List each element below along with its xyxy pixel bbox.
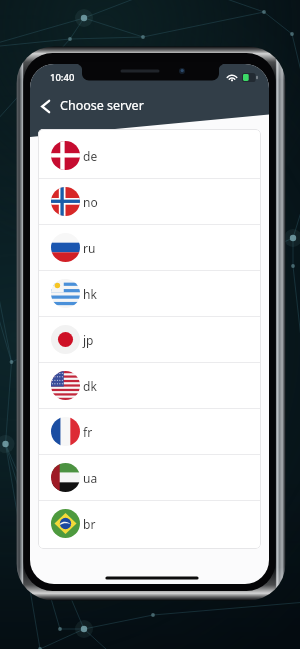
button[interactable]: fr	[38, 409, 261, 454]
staticText: de	[83, 148, 98, 164]
button[interactable]: de	[38, 133, 261, 178]
button[interactable]: ua	[38, 455, 261, 500]
button[interactable]: jp	[38, 317, 261, 362]
staticText: dk	[83, 378, 97, 394]
staticText: jp	[83, 332, 94, 348]
staticText: ua	[83, 470, 98, 486]
button[interactable]: hk	[38, 271, 261, 316]
staticText: hk	[83, 286, 97, 302]
staticText: 10:40	[50, 71, 75, 84]
staticText: no	[83, 194, 98, 210]
button[interactable]: br	[38, 501, 261, 546]
button[interactable]: Back	[30, 91, 60, 121]
staticText: br	[83, 516, 96, 532]
button[interactable]: no	[38, 179, 261, 224]
button[interactable]: dk	[38, 363, 261, 408]
staticText: fr	[83, 424, 93, 440]
staticText: ru	[83, 240, 96, 256]
staticText: Choose server	[60, 97, 144, 114]
button[interactable]: ru	[38, 225, 261, 270]
